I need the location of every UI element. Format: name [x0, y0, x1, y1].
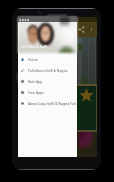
- staticText: About Lagu 6of6 & Nagita Full: [28, 101, 76, 106]
- staticText: Home: [28, 57, 38, 62]
- button[interactable]: Free Apps: [18, 87, 77, 98]
- staticText: Rate App: [28, 79, 43, 84]
- button[interactable]: About Lagu 6of6 & Nagita Full: [18, 98, 77, 109]
- button[interactable]: Rate App: [18, 76, 77, 87]
- staticText: Full Album 6of6: [21, 44, 48, 49]
- button[interactable]: Share: [76, 24, 87, 35]
- button[interactable]: Home: [18, 54, 77, 65]
- staticText: Full album 6of6 & Nagita: [28, 68, 68, 73]
- button[interactable]: Full album 6of6 & Nagita: [18, 65, 77, 76]
- button[interactable]: More options: [87, 25, 96, 34]
- staticText: Free Apps: [28, 90, 44, 95]
